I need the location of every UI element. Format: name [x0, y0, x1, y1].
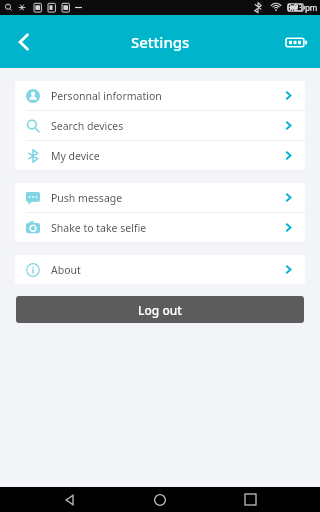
button[interactable]: Recent apps [230, 487, 270, 512]
staticText: Search devices [51, 119, 124, 133]
button[interactable]: About [15, 255, 305, 284]
button[interactable]: Shake to take selfie [15, 213, 305, 242]
staticText: My device [51, 149, 100, 163]
button[interactable]: Device battery level [278, 24, 314, 60]
staticText: Push message [51, 191, 123, 205]
button[interactable]: My device [15, 141, 305, 170]
staticText: Log out [138, 302, 182, 318]
staticText: 6:23 pm [287, 2, 318, 13]
button[interactable]: Back [50, 487, 90, 512]
staticText: Settings [131, 32, 190, 52]
button[interactable]: Personnal information [15, 81, 305, 110]
staticText: Personnal information [51, 89, 162, 103]
button[interactable]: Home [140, 487, 180, 512]
staticText: About [51, 263, 81, 277]
button[interactable]: Push message [15, 183, 305, 212]
button[interactable]: Log out [16, 296, 304, 323]
button[interactable]: Search devices [15, 111, 305, 140]
staticText: Shake to take selfie [51, 221, 147, 235]
button[interactable]: Back [0, 18, 48, 66]
